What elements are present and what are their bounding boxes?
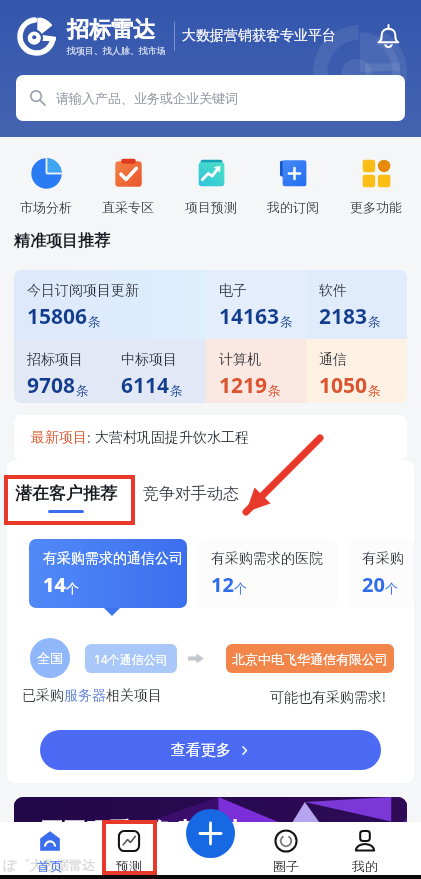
button[interactable]: 电子 [206,270,306,339]
staticText: 6114 [121,371,170,400]
staticText: 个 [385,580,398,596]
staticText: 竞争对手动态 [143,484,239,504]
button[interactable]: 我的 [339,829,391,874]
staticText: 请输入产品、业务或企业关键词 [56,90,238,106]
staticText: 预测 [116,858,142,874]
staticText: 有采购需求的通信公司 [43,550,183,568]
staticText: 开工旺季，智慧助力 [40,817,247,846]
staticText: 2183 [319,302,368,331]
button[interactable]: 北京中电飞华通信有限公司 [226,644,394,673]
staticText: 电子 [219,282,247,300]
button[interactable]: 市场分析 [9,157,83,215]
staticText: 大数据营销获客专业平台 [182,27,336,45]
staticText: 有采购需求的医院 [211,550,323,568]
staticText: 我的订阅 [267,199,319,215]
staticText: 条 [280,313,293,329]
staticText: 相关项目 [106,687,162,705]
staticText: 已采购 [22,687,64,705]
button[interactable]: 潜在客户推荐 [15,483,117,513]
staticText: 找项目、找人脉、找市场 [67,45,166,56]
staticText: 中标项目 [121,351,177,369]
staticText: 条 [368,313,381,329]
button[interactable]: 有采购需求的通信公司 [29,539,187,608]
button[interactable]: 通信 [306,339,407,403]
staticText: : [87,428,95,447]
button[interactable]: Add [186,809,235,858]
staticText: 招标雷达 [67,16,155,44]
staticText: 条 [76,382,89,398]
button[interactable]: 有采购需求的学校 [348,539,414,608]
staticText: 全国 [37,650,63,666]
staticText: 更多功能 [350,199,402,215]
button[interactable]: 我的订阅 [256,157,330,215]
staticText: 计算机 [219,351,261,369]
staticText: 条 [88,313,101,329]
staticText: 潜在客户推荐 [15,483,117,504]
button[interactable]: 更多功能 [339,157,413,215]
button[interactable]: 今日订阅项目更新 [14,270,206,339]
staticText: 条 [170,382,183,398]
button[interactable]: 软件 [306,270,407,339]
button[interactable]: Notifications [372,20,404,52]
button[interactable]: 预测 [103,829,155,874]
button[interactable]: 中标项目 [108,339,206,403]
staticText: 条 [368,382,381,398]
staticText: 大营村巩固提升饮水工程 [95,429,249,447]
button[interactable]: 首页 [24,829,76,874]
button[interactable]: 圈子 [260,829,312,874]
staticText: 1050 [319,371,368,400]
staticText: 今日订阅项目更新 [27,282,139,300]
staticText: 圈子 [273,858,299,874]
staticText: ぽ゜大数据雷达 [3,857,95,873]
staticText: 通信 [319,351,347,369]
staticText: 14 [43,571,66,598]
staticText: 个 [234,580,247,596]
button[interactable]: 招标项目 [14,339,108,403]
staticText: 有采购需求的学校 [362,550,414,568]
staticText: 9708 [27,371,76,400]
staticText: 14个通信公司 [94,651,168,667]
staticText: 直采专区 [102,199,154,215]
staticText: 服务器 [64,687,106,705]
staticText: 项目预测 [185,199,237,215]
staticText: 首页 [37,858,63,874]
button[interactable]: 开工旺季，智慧助力 [14,797,407,879]
staticText: 招标项目 [27,351,83,369]
staticText: 市场分析 [20,199,72,215]
button[interactable]: 14个通信公司 [85,644,177,673]
staticText: 12 [211,571,234,598]
staticText: 条 [268,382,281,398]
button[interactable]: 有采购需求的医院 [197,539,338,608]
button[interactable]: 最新项目 [14,415,407,460]
staticText: 软件 [319,282,347,300]
staticText: 我的 [352,858,378,874]
staticText: 北京中电飞华通信有限公司 [232,651,388,667]
button[interactable]: 竞争对手动态 [143,483,239,504]
staticText: 可能也有采购需求! [270,687,386,706]
staticText: 查看更多 [171,741,231,760]
button[interactable]: 计算机 [206,339,306,403]
button[interactable]: 项目预测 [174,157,248,215]
staticText: 14163 [219,302,280,331]
staticText: 个 [66,580,79,596]
button[interactable]: 全国 [30,638,70,678]
button[interactable]: 请输入产品、业务或企业关键词 [16,75,405,121]
staticText: 精准项目推荐 [14,231,110,251]
button[interactable]: 直采专区 [91,157,165,215]
staticText: 最新项目 [31,429,87,447]
button[interactable]: 查看更多 [40,730,381,770]
staticText: 20 [362,571,385,598]
staticText: 1219 [219,371,268,400]
staticText: 15806 [27,302,88,331]
